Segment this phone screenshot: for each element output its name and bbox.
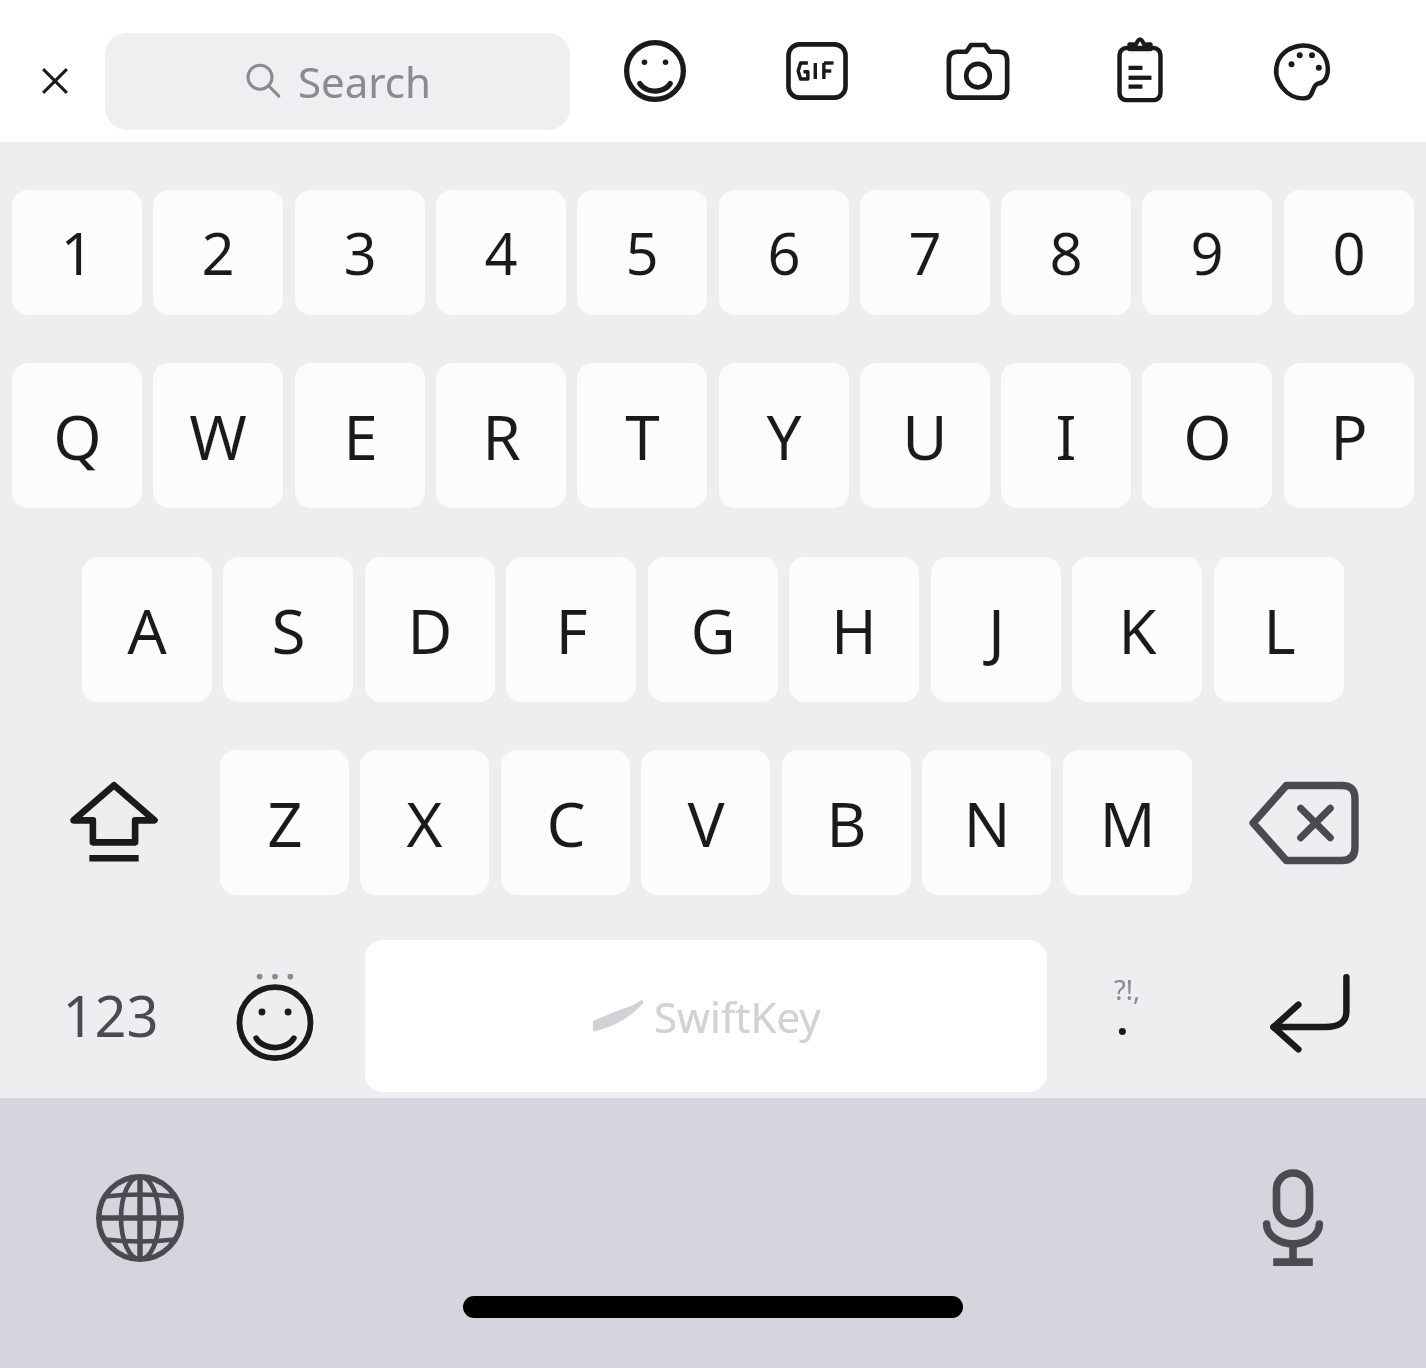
button[interactable]: C — [501, 750, 630, 895]
staticText: Q — [53, 394, 102, 478]
button[interactable]: N — [922, 750, 1051, 895]
staticText: R — [482, 394, 521, 478]
staticText: 8 — [1049, 213, 1083, 292]
staticText: P — [1330, 394, 1368, 478]
staticText: 4 — [484, 213, 518, 292]
staticText: L — [1263, 588, 1296, 672]
button[interactable]: Z — [220, 750, 349, 895]
staticText: K — [1118, 588, 1157, 672]
button[interactable]: 1 — [12, 190, 142, 315]
staticText: M — [1099, 781, 1156, 865]
button[interactable]: Q — [12, 363, 142, 508]
staticText: 7 — [908, 213, 942, 292]
button[interactable]: Enter — [1218, 940, 1398, 1090]
button[interactable]: L — [1214, 557, 1344, 702]
button[interactable]: G — [648, 557, 778, 702]
staticText: W — [189, 394, 247, 478]
button[interactable]: Backspace — [1208, 750, 1398, 895]
button[interactable]: K — [1072, 557, 1202, 702]
button[interactable]: GIF — [777, 28, 857, 114]
button[interactable]: 4 — [436, 190, 566, 315]
staticText: A — [127, 588, 167, 672]
button[interactable]: Camera — [938, 28, 1018, 114]
staticText: O — [1183, 394, 1232, 478]
staticText: ?!, — [1114, 971, 1141, 1008]
staticText: H — [831, 588, 877, 672]
staticText: V — [687, 781, 725, 865]
button[interactable]: Emoji — [200, 940, 350, 1090]
staticText: G — [690, 588, 736, 672]
button[interactable]: 2 — [153, 190, 283, 315]
staticText: N — [963, 781, 1011, 865]
button[interactable]: Search — [105, 33, 570, 130]
button[interactable]: U — [860, 363, 990, 508]
button[interactable]: M — [1063, 750, 1192, 895]
button[interactable]: 8 — [1001, 190, 1131, 315]
button[interactable]: J — [931, 557, 1061, 702]
staticText: U — [902, 394, 948, 478]
button[interactable]: Change language — [75, 1153, 205, 1283]
button[interactable]: Space — [365, 940, 1047, 1092]
button[interactable]: A — [82, 557, 212, 702]
staticText: I — [1055, 394, 1077, 478]
button[interactable]: 3 — [295, 190, 425, 315]
button[interactable]: 9 — [1142, 190, 1272, 315]
button[interactable]: Punctuation — [1047, 940, 1207, 1090]
staticText: SwiftKey — [654, 988, 821, 1045]
button[interactable]: 0 — [1284, 190, 1414, 315]
button[interactable]: I — [1001, 363, 1131, 508]
button[interactable]: B — [782, 750, 911, 895]
button[interactable]: Voice input — [1228, 1153, 1358, 1283]
staticText: 9 — [1190, 213, 1224, 292]
button[interactable]: Shift — [24, 750, 204, 895]
button[interactable]: T — [577, 363, 707, 508]
staticText: C — [546, 781, 586, 865]
button[interactable]: W — [153, 363, 283, 508]
staticText: J — [988, 588, 1005, 672]
button[interactable]: R — [436, 363, 566, 508]
button[interactable]: Close — [14, 40, 96, 122]
staticText: B — [826, 781, 867, 865]
staticText: X — [406, 781, 443, 865]
button[interactable]: V — [641, 750, 770, 895]
button[interactable]: O — [1142, 363, 1272, 508]
button[interactable]: 6 — [719, 190, 849, 315]
button[interactable]: H — [789, 557, 919, 702]
staticText: 5 — [625, 213, 659, 292]
staticText: F — [555, 588, 588, 672]
staticText: E — [343, 394, 378, 478]
button[interactable]: Y — [719, 363, 849, 508]
staticText: Y — [766, 394, 802, 478]
staticText: S — [271, 588, 306, 672]
button[interactable]: S — [223, 557, 353, 702]
button[interactable]: Emoji — [615, 28, 695, 114]
button[interactable]: 123 — [20, 940, 200, 1090]
button[interactable]: X — [360, 750, 489, 895]
staticText: 123 — [62, 977, 159, 1053]
staticText: 0 — [1332, 213, 1366, 292]
staticText: T — [625, 394, 660, 478]
button[interactable]: 7 — [860, 190, 990, 315]
staticText: Z — [267, 781, 303, 865]
button[interactable]: F — [506, 557, 636, 702]
staticText: 6 — [767, 213, 801, 292]
button[interactable]: E — [295, 363, 425, 508]
staticText: 1 — [60, 213, 94, 292]
button[interactable]: D — [365, 557, 495, 702]
staticText: D — [407, 588, 453, 672]
button[interactable]: 5 — [577, 190, 707, 315]
button[interactable]: Themes — [1263, 28, 1343, 114]
staticText: Search — [298, 53, 431, 110]
button[interactable]: Clipboard — [1100, 28, 1180, 114]
button[interactable]: P — [1284, 363, 1414, 508]
staticText: 2 — [201, 213, 235, 292]
staticText: 3 — [343, 213, 377, 292]
